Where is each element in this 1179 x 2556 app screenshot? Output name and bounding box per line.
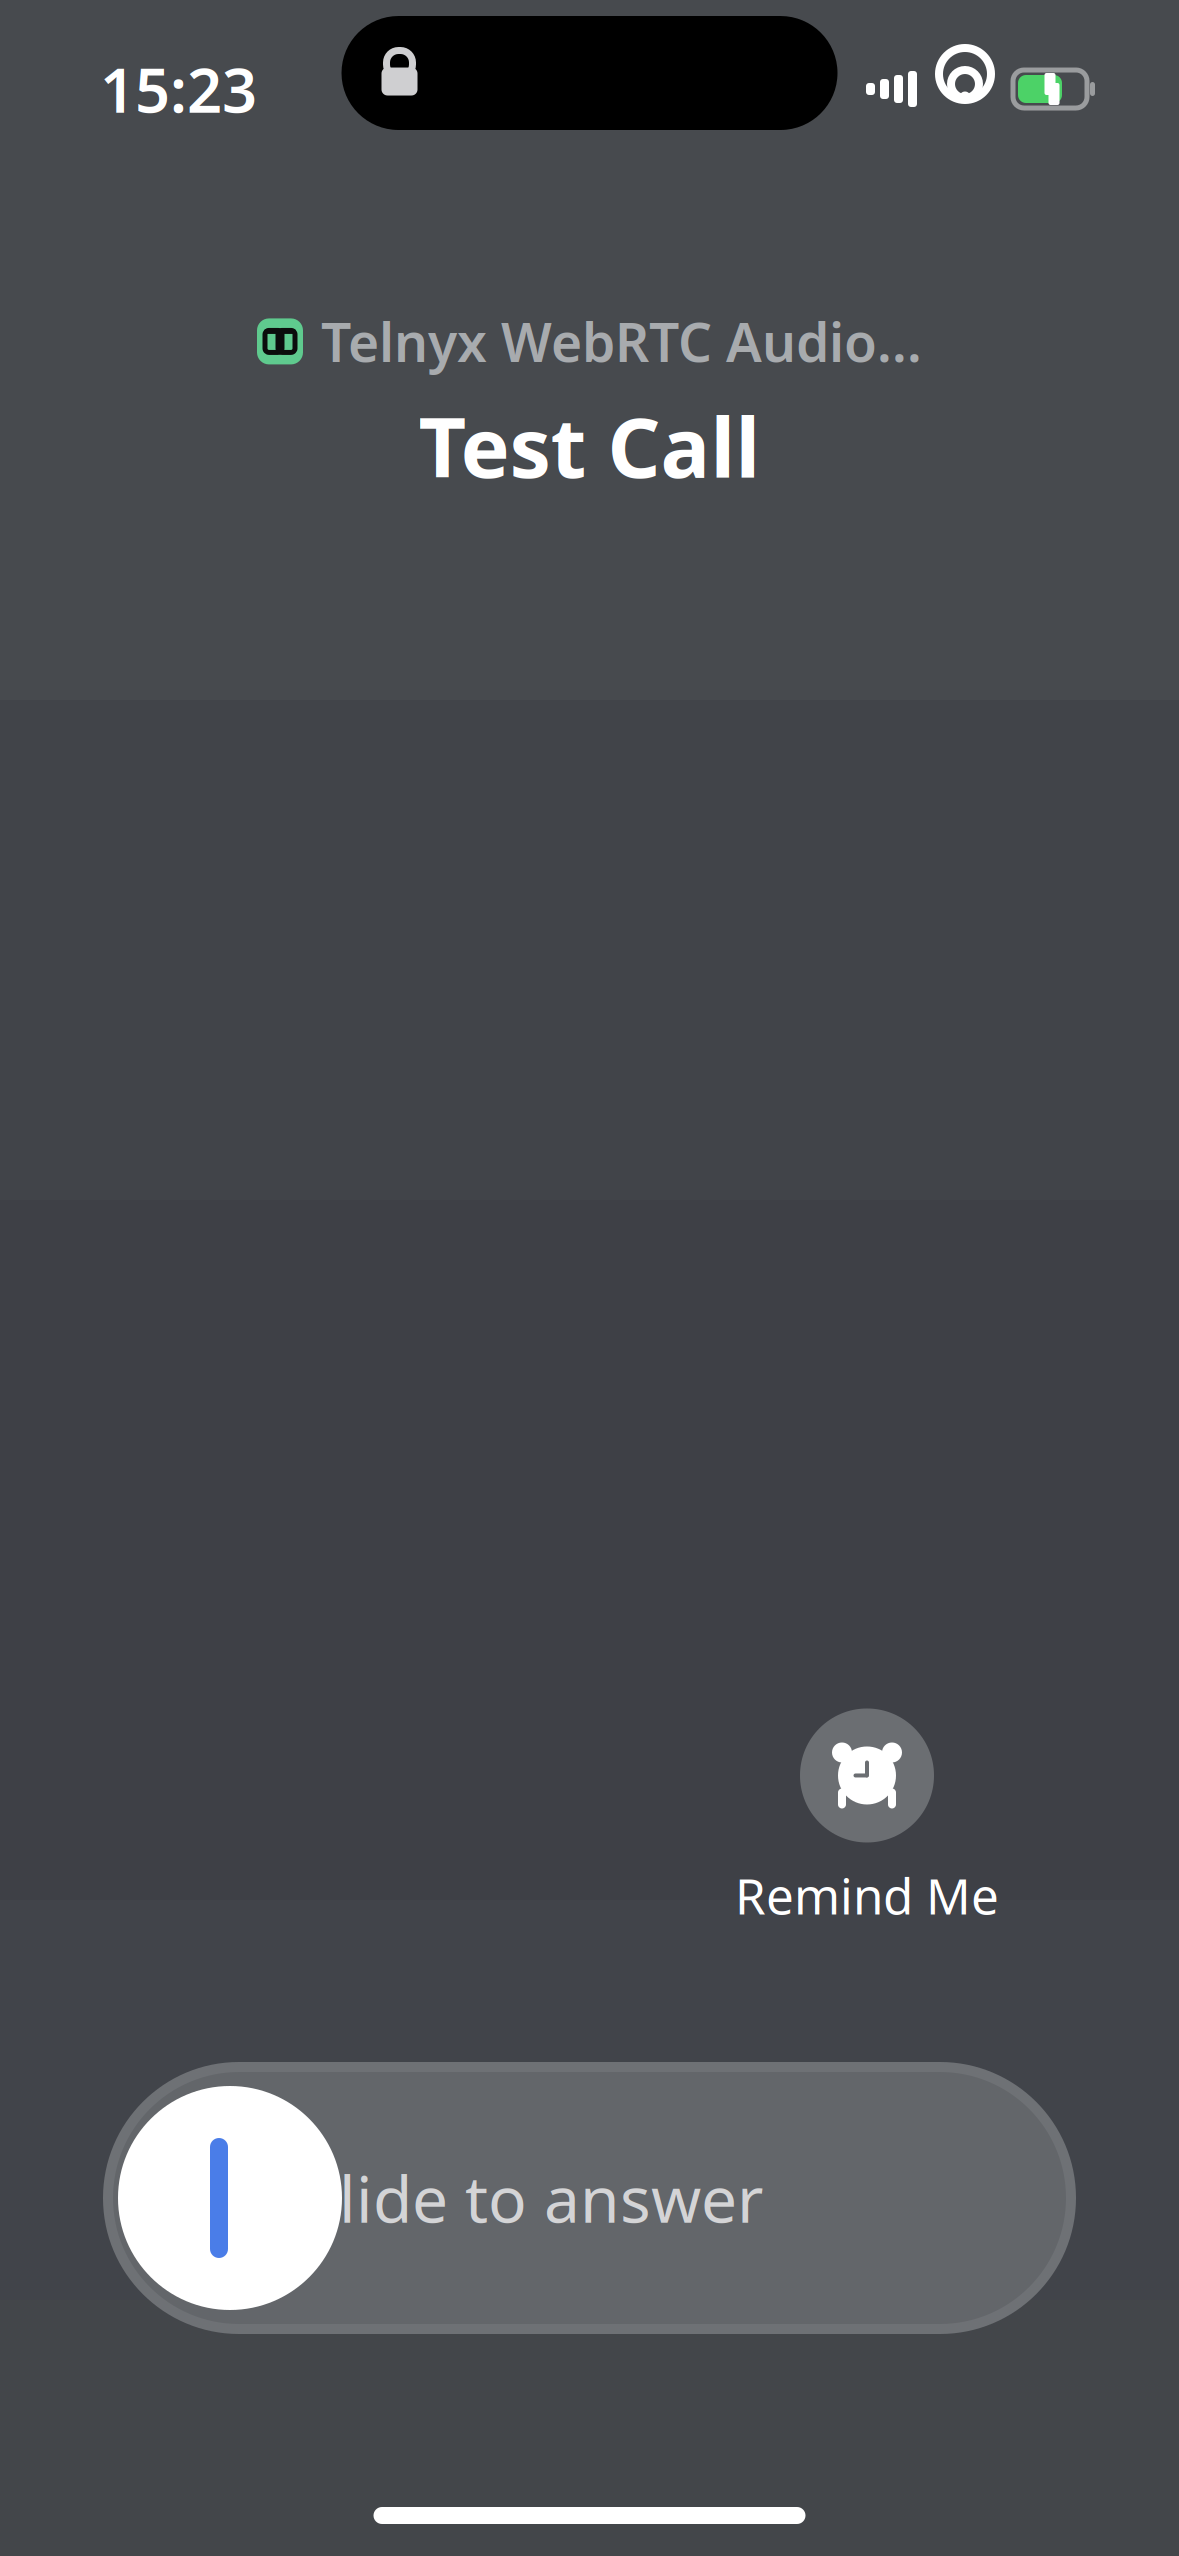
staticText: 15:23 (100, 48, 257, 130)
staticText: Test Call (418, 391, 760, 501)
button[interactable]: Slide to answer (108, 2067, 1071, 2329)
staticText: slide to answer (308, 2155, 763, 2240)
staticText: Telnyx WebRTC Audio... (321, 306, 922, 377)
staticText: Remind Me (735, 1862, 999, 1928)
button[interactable]: Remind Me (735, 1708, 999, 1928)
